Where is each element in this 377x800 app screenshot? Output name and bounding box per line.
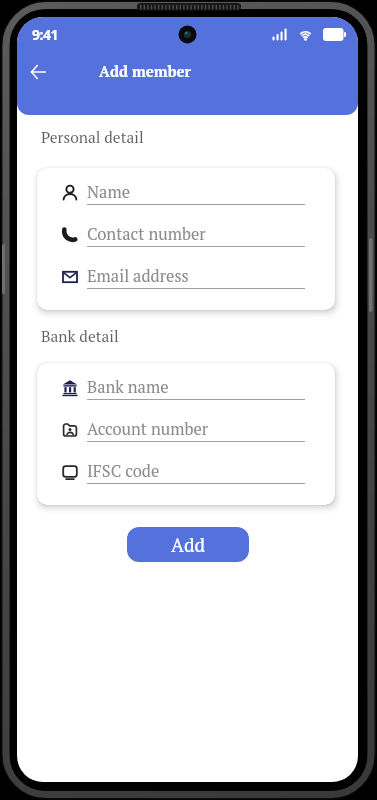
button[interactable]: IFSC code <box>37 451 335 493</box>
staticText: Add <box>171 532 206 557</box>
button[interactable]: Contact number <box>37 214 335 256</box>
button[interactable]: Email address <box>37 256 335 298</box>
staticText: 9:41 <box>32 25 58 44</box>
button[interactable]: Add <box>127 527 249 562</box>
staticText: Personal detail <box>41 127 144 148</box>
staticText: Add member <box>99 61 192 81</box>
staticText: Bank name <box>87 376 169 398</box>
staticText: Contact number <box>87 223 206 245</box>
button[interactable]: Name <box>37 172 335 214</box>
staticText: IFSC code <box>87 460 160 482</box>
staticText: Name <box>87 181 130 203</box>
button[interactable]: Bank name <box>37 367 335 409</box>
staticText: Email address <box>87 265 189 287</box>
staticText: Bank detail <box>41 326 119 347</box>
button[interactable] <box>21 56 55 88</box>
staticText: Account number <box>87 418 209 440</box>
button[interactable]: Account number <box>37 409 335 451</box>
